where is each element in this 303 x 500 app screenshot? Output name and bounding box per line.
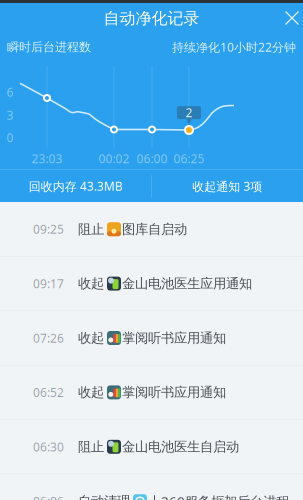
staticText: 23:03	[31, 150, 62, 166]
staticText: 收起	[78, 330, 104, 346]
staticText: 07:26	[33, 330, 64, 346]
staticText: 图库自启动	[122, 221, 187, 237]
staticText: 06:06	[33, 493, 64, 500]
staticText: 掌阅听书应用通知	[122, 384, 226, 401]
staticText: 06:52	[33, 384, 64, 400]
button[interactable]: 收起通知 3项	[152, 170, 303, 203]
staticText: 09:17	[33, 276, 64, 291]
staticText: 阻止	[78, 221, 104, 237]
staticText: 金山电池医生自启动	[122, 439, 239, 455]
staticText: 自动净化记录	[103, 9, 199, 28]
staticText: 金山电池医生应用通知	[122, 275, 252, 292]
staticText: 0	[6, 129, 13, 145]
staticText: 阻止	[78, 439, 104, 455]
button[interactable]: 回收内存 43.3MB	[0, 170, 151, 203]
button[interactable]: 06:06	[0, 474, 303, 500]
staticText: 06:30	[33, 439, 64, 455]
button[interactable]: 09:25	[0, 202, 303, 256]
staticText: 2	[185, 105, 192, 120]
staticText: 上360服务框架后台进程	[148, 492, 289, 500]
staticText: 06:00	[136, 150, 167, 166]
staticText: 00:02	[98, 150, 129, 166]
staticText: 瞬时后台进程数	[7, 40, 91, 54]
staticText: 自动清理	[78, 493, 130, 500]
staticText: 收起	[78, 275, 104, 292]
staticText: 收起通知 3项	[192, 178, 262, 194]
button[interactable]: 09:17	[0, 256, 303, 311]
button[interactable]: 06:30	[0, 420, 303, 474]
staticText: 收起	[78, 384, 104, 401]
staticText: 掌阅听书应用通知	[122, 330, 226, 346]
button[interactable]: 关闭	[275, 1, 303, 35]
staticText: 持续净化10小时22分钟	[172, 39, 296, 55]
staticText: 回收内存 43.3MB	[29, 178, 123, 194]
staticText: 6	[6, 84, 13, 100]
button[interactable]: 06:52	[0, 365, 303, 420]
button[interactable]: 07:26	[0, 311, 303, 365]
staticText: 09:25	[33, 221, 64, 237]
staticText: 06:25	[173, 150, 204, 166]
staticText: 3	[6, 107, 13, 123]
